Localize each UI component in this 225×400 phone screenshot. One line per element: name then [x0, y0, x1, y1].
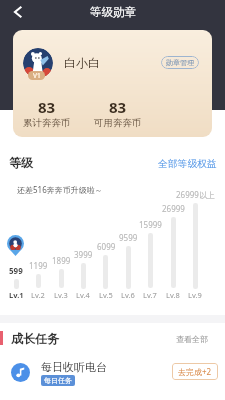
staticText: 1199 — [29, 260, 48, 271]
staticText: 白小白 — [64, 55, 100, 70]
staticText: Lv.7 — [143, 290, 157, 300]
staticText: 去完成+2 — [178, 366, 212, 377]
button[interactable]: Back — [8, 2, 28, 22]
staticText: 83 — [109, 97, 127, 117]
staticText: Lv.2 — [31, 290, 45, 300]
staticText: 每日任务 — [44, 376, 72, 385]
staticText: Lv.4 — [76, 290, 90, 300]
staticText: 成长任务 — [11, 331, 59, 346]
staticText: 1899 — [52, 255, 71, 266]
staticText: 等级 — [9, 155, 33, 170]
button[interactable]: 去完成+2 — [172, 363, 218, 380]
staticText: Lv.9 — [188, 290, 202, 300]
staticText: 599 — [9, 265, 23, 276]
staticText: Lv.1 — [9, 290, 24, 300]
staticText: 26999 — [162, 203, 185, 214]
staticText: 15999 — [139, 219, 162, 230]
staticText: 查看全部 — [176, 334, 208, 344]
button[interactable]: 勋章管理 — [161, 56, 199, 69]
staticText: 累计奔奔币 — [23, 117, 71, 129]
staticText: Lv.5 — [99, 290, 113, 300]
staticText: 6099 — [97, 241, 116, 252]
staticText: 26999以上 — [176, 189, 215, 200]
staticText: 还差516奔奔币升级啦～ — [17, 184, 103, 195]
staticText: Lv.6 — [121, 290, 135, 300]
staticText: 全部等级权益 — [158, 158, 217, 170]
staticText: 9599 — [119, 232, 138, 243]
staticText: 勋章管理 — [166, 58, 194, 67]
staticText: Lv.3 — [54, 290, 68, 300]
staticText: Lv.8 — [166, 290, 180, 300]
staticText: 83 — [38, 97, 56, 117]
button[interactable]: 每日收听电台 — [0, 355, 225, 391]
button[interactable]: 查看全部 — [176, 334, 208, 344]
staticText: V1 — [33, 71, 41, 80]
staticText: 3999 — [74, 249, 93, 260]
staticText: 等级勋章 — [90, 5, 136, 19]
staticText: 每日收听电台 — [41, 360, 107, 374]
staticText: 可用奔奔币 — [94, 117, 142, 129]
button[interactable]: 全部等级权益 — [158, 158, 217, 170]
